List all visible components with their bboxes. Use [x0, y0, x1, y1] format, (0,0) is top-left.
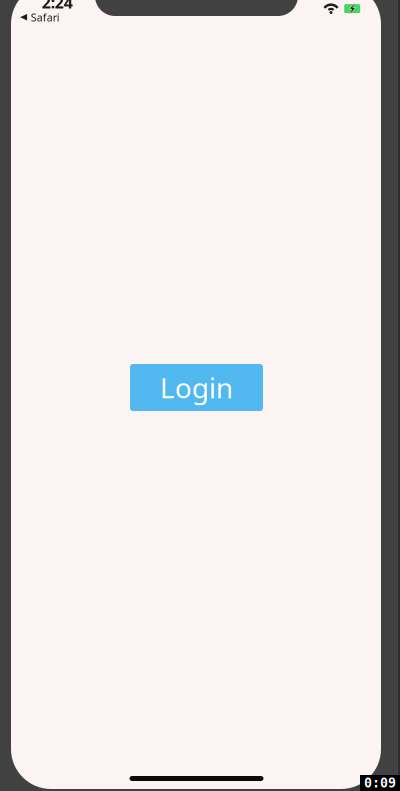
- staticText: 0:09: [364, 775, 396, 790]
- staticText: 2:24: [42, 0, 73, 13]
- staticText: Login: [160, 369, 233, 406]
- staticText: Safari: [31, 10, 60, 24]
- button[interactable]: Login: [130, 364, 263, 411]
- button[interactable]: Safari: [20, 10, 60, 24]
